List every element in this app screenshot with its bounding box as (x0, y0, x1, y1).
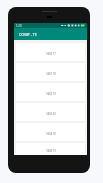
staticText: 5600 17 (46, 52, 56, 56)
button[interactable]: 5600 17 (16, 43, 85, 61)
staticText: 5605 19 (46, 149, 56, 153)
button[interactable]: 5604 18 (16, 123, 85, 141)
staticText: 1:23 (16, 24, 22, 28)
staticText: 5602 19 (46, 92, 56, 96)
button[interactable]: 5601 18 (16, 63, 85, 81)
button[interactable]: 5602 19 (16, 83, 85, 101)
staticText: 5604 18 (46, 132, 56, 136)
button[interactable]: 5605 19 (16, 143, 85, 155)
staticText: 5603 20 (46, 112, 56, 116)
button[interactable]: 5603 20 (16, 103, 85, 121)
staticText: COMP - TE (19, 32, 37, 37)
staticText: 5601 18 (46, 72, 56, 76)
